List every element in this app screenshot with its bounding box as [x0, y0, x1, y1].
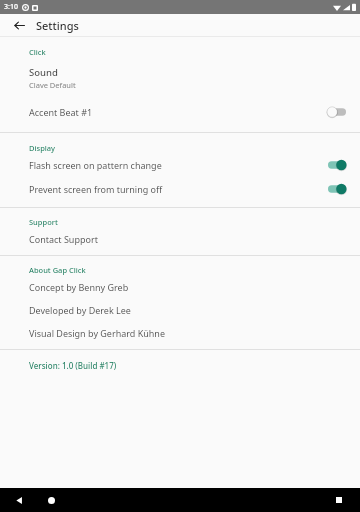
staticText: Display: [29, 143, 56, 153]
button[interactable]: Prevent screen from turning off: [0, 177, 360, 201]
staticText: Support: [29, 217, 58, 227]
button[interactable]: Sound: [0, 57, 360, 94]
button[interactable]: Accent Beat #1: [0, 100, 360, 124]
button[interactable]: Contact Support: [0, 227, 360, 250]
staticText: Accent Beat #1: [29, 106, 326, 118]
button[interactable]: Back: [8, 14, 30, 36]
button[interactable]: Back: [10, 491, 28, 509]
button[interactable]: Concept by Benny Greb: [0, 275, 360, 298]
button[interactable]: Visual Design by Gerhard Kühne: [0, 321, 360, 344]
staticText: Contact Support: [29, 233, 98, 245]
staticText: Prevent screen from turning off: [29, 183, 326, 195]
button[interactable]: Flash screen on pattern change: [0, 153, 360, 177]
staticText: Click: [29, 47, 46, 57]
staticText: About Gap Click: [29, 265, 86, 275]
staticText: 3:10: [4, 2, 18, 12]
button[interactable]: Developed by Derek Lee: [0, 298, 360, 321]
button[interactable]: Home: [42, 491, 60, 509]
staticText: Version: 1.0 (Build #17): [29, 360, 117, 371]
staticText: Flash screen on pattern change: [29, 159, 326, 171]
button[interactable]: Recent apps: [330, 491, 348, 509]
staticText: Visual Design by Gerhard Kühne: [29, 327, 166, 339]
staticText: Sound: [29, 66, 58, 79]
staticText: Settings: [36, 18, 79, 33]
staticText: Concept by Benny Greb: [29, 281, 129, 293]
staticText: Clave Default: [29, 80, 76, 90]
staticText: Developed by Derek Lee: [29, 304, 131, 316]
